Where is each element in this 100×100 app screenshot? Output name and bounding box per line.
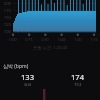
staticText: 133 (21, 72, 35, 82)
staticText: 0:45 (54, 37, 70, 42)
staticText: 0:15 (21, 37, 37, 42)
staticText: 125 (0, 22, 11, 28)
staticText: 0:00 (5, 37, 21, 42)
staticText: 심박 (bpm) (3, 63, 29, 70)
staticText: 200 (0, 1, 11, 7)
staticText: 평균 (24, 82, 32, 87)
staticText: 175 (0, 8, 11, 14)
staticText: 174 (71, 72, 85, 82)
staticText: 1:15 (86, 37, 100, 42)
staticText: 150 (0, 15, 11, 21)
staticText: 100 (0, 29, 11, 35)
staticText: 1:00 (70, 37, 86, 42)
staticText: 최대 (74, 82, 82, 87)
staticText: 운동 시간 1:20:00 (33, 45, 68, 51)
staticText: 0:30 (37, 37, 53, 42)
